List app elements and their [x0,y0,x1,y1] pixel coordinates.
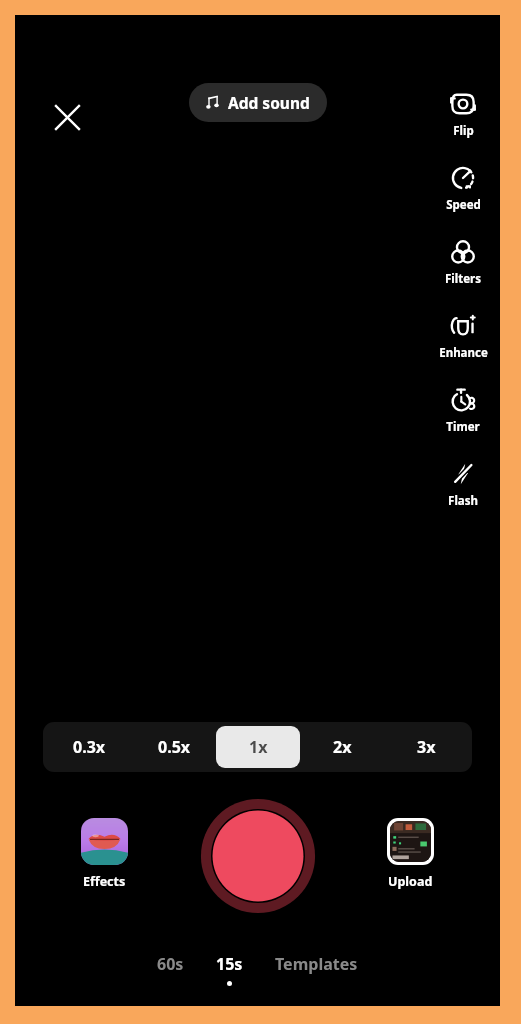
staticText: Flip [453,123,474,139]
staticText: Flash [448,493,478,509]
staticText: Upload [388,873,433,890]
button[interactable]: Add sound [189,83,327,122]
button[interactable]: Timer [426,380,500,441]
button[interactable]: Flash [426,454,500,515]
staticText: Effects [83,873,126,890]
staticText: 0.5x [158,736,191,758]
button[interactable]: 2x [300,726,384,768]
button[interactable]: 1x [216,726,300,768]
button[interactable]: Templates [259,949,374,979]
staticText: 2x [333,736,352,758]
button[interactable]: Filters [426,232,500,293]
button[interactable]: 3x [384,726,468,768]
button[interactable]: 15s [200,949,259,990]
button[interactable]: 0.5x [132,726,216,768]
button[interactable]: Record [200,798,316,914]
staticText: Enhance [439,345,488,361]
staticText: 0.3x [73,736,106,758]
button[interactable]: Effects [77,814,132,894]
button[interactable]: Speed [426,158,500,219]
staticText: Templates [275,953,358,975]
staticText: Speed [446,197,481,213]
button[interactable]: Close [41,91,93,143]
staticText: Add sound [228,92,310,113]
button[interactable]: Upload [383,814,438,894]
button[interactable]: Flip [426,84,500,145]
staticText: 3x [417,736,436,758]
staticText: Filters [445,271,481,287]
button[interactable]: 60s [141,949,200,979]
staticText: 60s [157,953,184,975]
staticText: 1x [249,736,268,758]
staticText: Timer [446,419,480,435]
button[interactable]: 0.3x [47,726,132,768]
staticText: 15s [216,953,243,975]
button[interactable]: Enhance [426,306,500,367]
